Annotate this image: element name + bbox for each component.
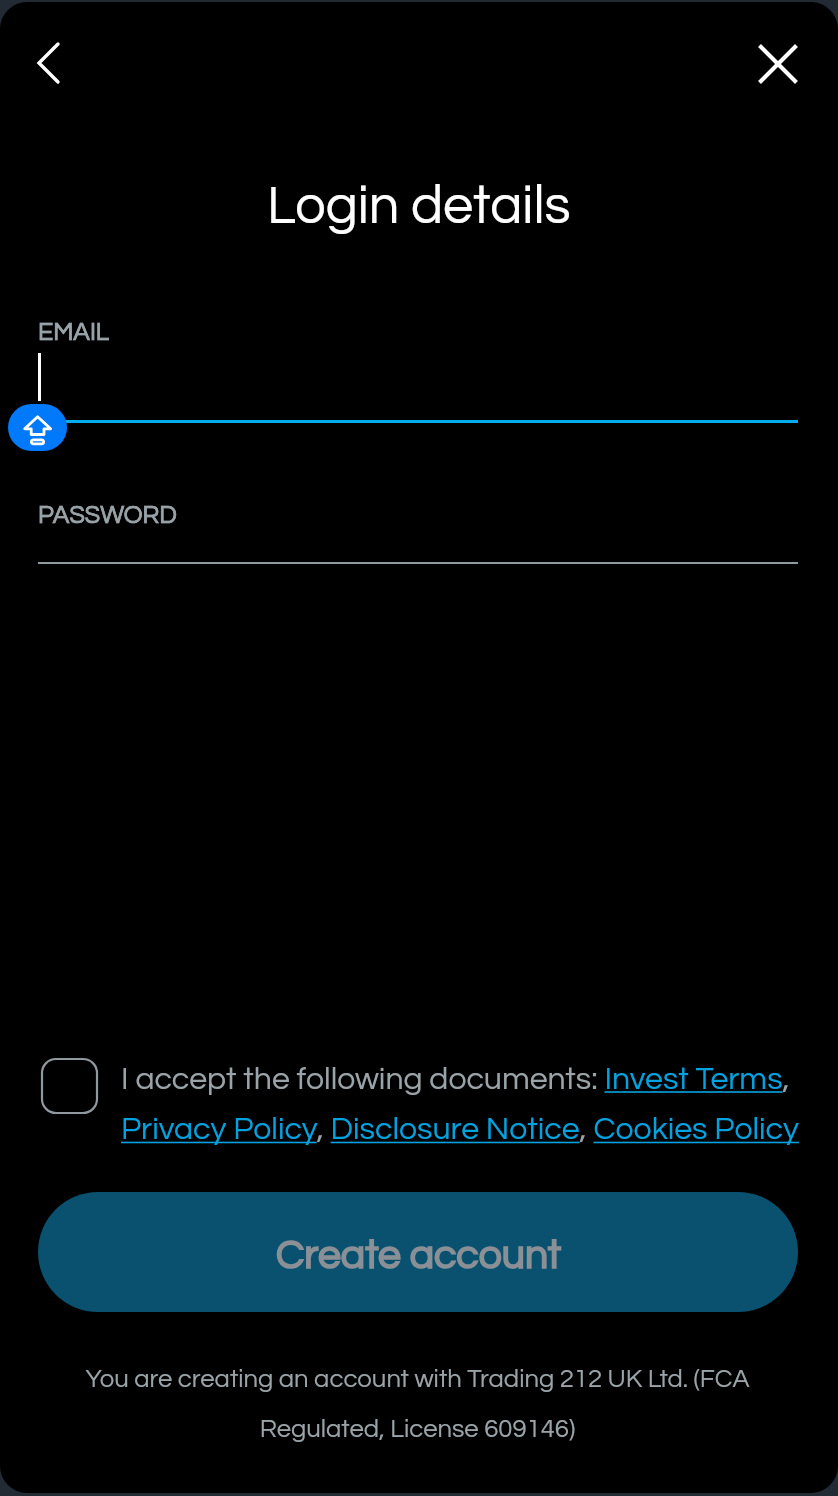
button[interactable]: Close <box>750 36 806 92</box>
button[interactable]: I accept the following documents: Invest… <box>121 1063 803 1146</box>
button[interactable]: Password field <box>38 495 798 565</box>
staticText: I accept the following documents: Invest… <box>121 1063 803 1146</box>
staticText: Login details <box>267 179 571 235</box>
staticText: EMAIL <box>38 319 110 345</box>
staticText: Create account <box>276 1234 562 1276</box>
staticText: You are creating an account with Trading… <box>77 1366 758 1442</box>
staticText: Create account <box>276 1234 562 1276</box>
button[interactable]: Back <box>13 35 69 91</box>
button[interactable]: Email field <box>38 312 798 425</box>
button[interactable]: Autofill suggestion <box>8 404 67 451</box>
button[interactable]: Create account <box>38 1192 798 1312</box>
button[interactable]: Accept documents <box>41 1058 98 1115</box>
staticText: EMAIL <box>38 319 110 345</box>
staticText: PASSWORD <box>38 502 177 528</box>
staticText: PASSWORD <box>38 502 177 528</box>
